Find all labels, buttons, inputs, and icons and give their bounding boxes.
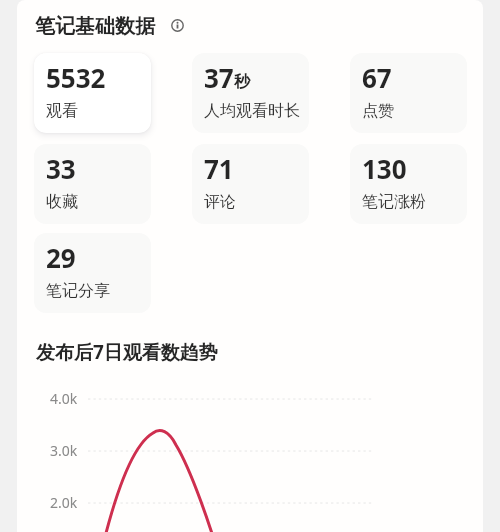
staticText: 笔记分享 bbox=[46, 281, 110, 301]
button[interactable]: 数据说明 bbox=[171, 19, 184, 32]
button[interactable]: 67 bbox=[350, 53, 467, 133]
button[interactable]: 37 bbox=[192, 53, 309, 133]
staticText: 点赞 bbox=[362, 101, 394, 121]
staticText: 29 bbox=[46, 240, 76, 275]
button[interactable]: 130 bbox=[350, 144, 467, 224]
staticText: 4.0k bbox=[50, 389, 78, 408]
staticText: 3.0k bbox=[50, 441, 78, 460]
staticText: 观看 bbox=[46, 101, 78, 121]
staticText: 评论 bbox=[204, 192, 236, 212]
staticText: 收藏 bbox=[46, 192, 78, 212]
button[interactable]: 33 bbox=[34, 144, 151, 224]
button[interactable]: 71 bbox=[192, 144, 309, 224]
button[interactable]: 5532 bbox=[34, 53, 151, 133]
staticText: 71 bbox=[204, 151, 234, 186]
staticText: 5532 bbox=[46, 60, 106, 95]
staticText: 33 bbox=[46, 151, 76, 186]
staticText: 37 bbox=[204, 60, 234, 95]
staticText: 130 bbox=[362, 151, 407, 186]
staticText: 2.0k bbox=[50, 493, 78, 512]
staticText: 秒 bbox=[234, 72, 250, 92]
staticText: 67 bbox=[362, 60, 392, 95]
staticText: 发布后7日观看数趋势 bbox=[36, 339, 218, 365]
staticText: 笔记基础数据 bbox=[35, 14, 155, 39]
staticText: 人均观看时长 bbox=[204, 101, 300, 121]
button[interactable]: 29 bbox=[34, 233, 151, 313]
staticText: 笔记涨粉 bbox=[362, 192, 426, 212]
